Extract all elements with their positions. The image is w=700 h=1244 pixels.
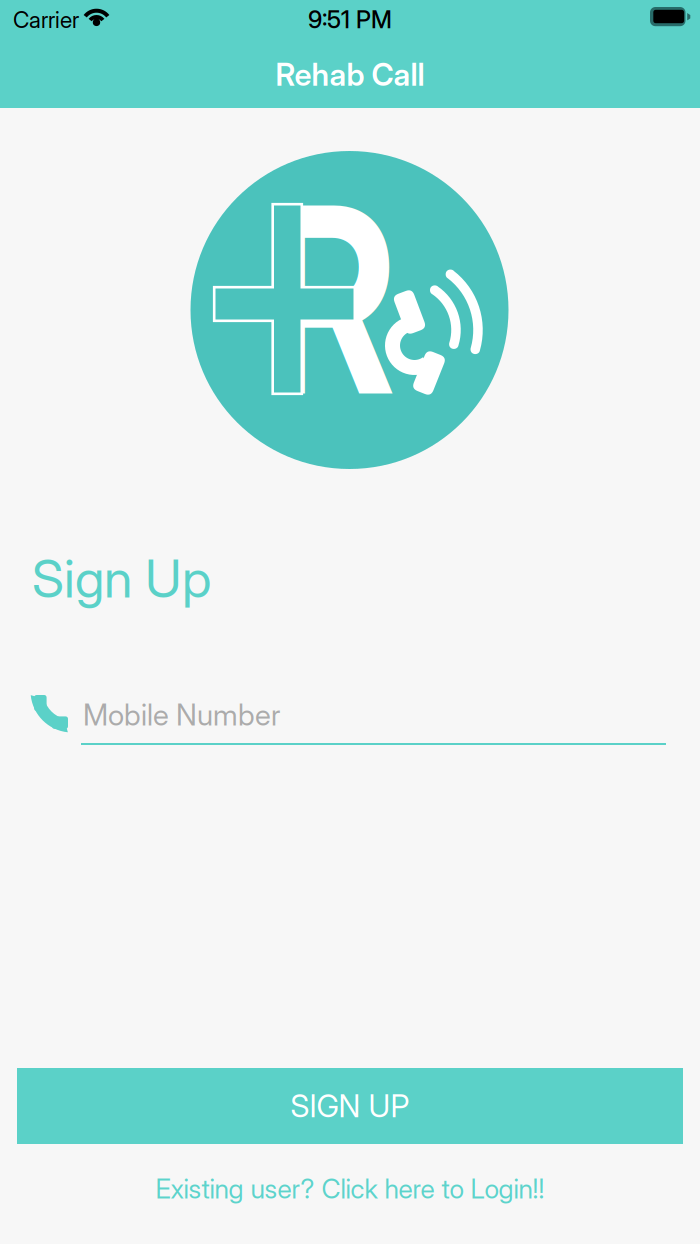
staticText: R — [262, 143, 430, 456]
staticText: Carrier — [13, 6, 79, 33]
button[interactable]: SIGN UP — [17, 1068, 683, 1144]
staticText: 9:51 PM — [308, 5, 392, 34]
button[interactable]: Existing user? Click here to Login!! — [140, 1166, 560, 1212]
staticText: Sign Up — [32, 547, 211, 610]
staticText: Existing user? Click here to Login!! — [155, 1173, 544, 1205]
staticText: Rehab Call — [275, 56, 424, 93]
staticText: Mobile Number — [83, 697, 280, 732]
staticText: SIGN UP — [290, 1087, 409, 1124]
